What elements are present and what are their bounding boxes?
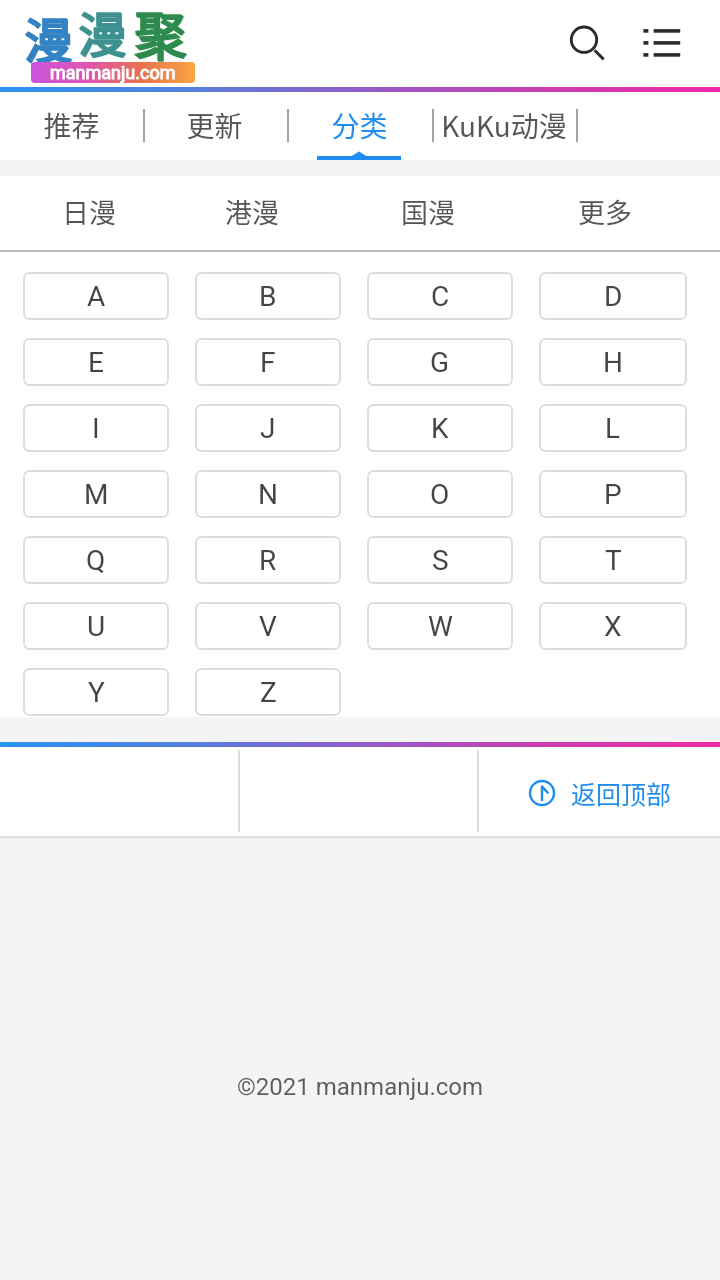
button[interactable]: E bbox=[23, 338, 169, 386]
button[interactable]: Q bbox=[23, 536, 169, 584]
button[interactable]: F bbox=[195, 338, 341, 386]
staticText: 更多 bbox=[578, 192, 632, 231]
staticText: A bbox=[87, 280, 106, 313]
button[interactable]: H bbox=[539, 338, 687, 386]
button[interactable]: M bbox=[23, 470, 169, 518]
button[interactable]: K bbox=[367, 404, 513, 452]
staticText: N bbox=[258, 478, 278, 511]
button[interactable]: C bbox=[367, 272, 513, 320]
staticText: KuKu动漫 bbox=[441, 105, 567, 146]
button[interactable]: 更多 bbox=[535, 173, 675, 249]
button[interactable]: 漫 bbox=[0, 0, 720, 87]
button[interactable]: T bbox=[539, 536, 687, 584]
button[interactable]: V bbox=[195, 602, 341, 650]
button[interactable]: Menu bbox=[630, 12, 692, 74]
button[interactable]: I bbox=[23, 404, 169, 452]
button[interactable]: 港漫 bbox=[182, 173, 322, 249]
button[interactable]: W bbox=[367, 602, 513, 650]
button[interactable]: Search bbox=[556, 12, 618, 74]
staticText: 聚 bbox=[135, 0, 188, 71]
staticText: 更新 bbox=[186, 105, 243, 146]
staticText: 推荐 bbox=[43, 105, 100, 146]
staticText: U bbox=[87, 610, 106, 643]
staticText: R bbox=[259, 544, 277, 577]
staticText: P bbox=[604, 478, 622, 511]
staticText: H bbox=[603, 346, 623, 379]
staticText: 国漫 bbox=[401, 192, 455, 231]
button[interactable]: D bbox=[539, 272, 687, 320]
staticText: Q bbox=[86, 544, 106, 577]
staticText: M bbox=[84, 478, 109, 511]
button[interactable]: N bbox=[195, 470, 341, 518]
button[interactable]: R bbox=[195, 536, 341, 584]
button[interactable]: G bbox=[367, 338, 513, 386]
staticText: 港漫 bbox=[225, 192, 279, 231]
staticText: O bbox=[430, 478, 450, 511]
staticText: ©2021 manmanju.com bbox=[237, 1073, 484, 1101]
button[interactable]: B bbox=[195, 272, 341, 320]
button[interactable]: U bbox=[23, 602, 169, 650]
staticText: V bbox=[259, 610, 277, 643]
staticText: F bbox=[260, 346, 276, 379]
staticText: 聚 bbox=[134, 0, 187, 70]
staticText: I bbox=[92, 412, 100, 445]
button[interactable]: L bbox=[539, 404, 687, 452]
button[interactable] bbox=[0, 747, 239, 838]
button[interactable]: 返回顶部 bbox=[479, 747, 720, 838]
button[interactable]: S bbox=[367, 536, 513, 584]
staticText: manmanju.com bbox=[50, 62, 176, 83]
staticText: G bbox=[430, 346, 450, 379]
button[interactable]: 日漫 bbox=[19, 173, 159, 249]
staticText: W bbox=[428, 610, 453, 643]
staticText: D bbox=[604, 280, 623, 313]
staticText: J bbox=[260, 412, 276, 445]
button[interactable]: KuKu动漫 bbox=[432, 92, 575, 160]
staticText: 分类 bbox=[331, 105, 388, 146]
staticText: C bbox=[431, 280, 450, 313]
staticText: B bbox=[259, 280, 277, 313]
staticText: 日漫 bbox=[62, 192, 116, 231]
button[interactable]: P bbox=[539, 470, 687, 518]
button[interactable]: Y bbox=[23, 668, 169, 716]
button[interactable]: A bbox=[23, 272, 169, 320]
staticText: K bbox=[431, 412, 449, 445]
staticText: 漫 bbox=[24, 2, 73, 72]
button[interactable]: J bbox=[195, 404, 341, 452]
staticText: X bbox=[604, 610, 622, 643]
staticText: 返回顶部 bbox=[571, 775, 672, 811]
staticText: 漫 bbox=[25, 3, 74, 73]
button[interactable]: 更新 bbox=[143, 92, 286, 160]
button[interactable]: 推荐 bbox=[0, 92, 142, 160]
staticText: Z bbox=[260, 676, 277, 709]
staticText: S bbox=[432, 544, 449, 577]
staticText: 漫 bbox=[78, 0, 127, 66]
button[interactable]: O bbox=[367, 470, 513, 518]
button[interactable]: 国漫 bbox=[358, 173, 498, 249]
button[interactable]: 分类 bbox=[287, 92, 431, 160]
staticText: T bbox=[605, 544, 622, 577]
button[interactable] bbox=[240, 747, 477, 838]
staticText: E bbox=[88, 346, 104, 379]
staticText: L bbox=[605, 412, 621, 445]
staticText: 漫 bbox=[79, 0, 128, 67]
staticText: Y bbox=[88, 676, 105, 709]
button[interactable]: X bbox=[539, 602, 687, 650]
button[interactable]: Z bbox=[195, 668, 341, 716]
